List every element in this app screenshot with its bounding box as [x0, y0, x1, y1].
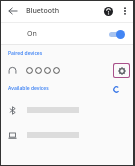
other: Scanning [111, 84, 121, 94]
button[interactable]: On [0, 23, 135, 44]
staticText: Available devices [8, 85, 49, 92]
button[interactable]: Device settings [114, 64, 129, 77]
staticText: On [27, 29, 37, 39]
button[interactable]: Back [4, 2, 22, 20]
staticText: Bluetooth [26, 6, 60, 16]
button[interactable] [0, 127, 135, 143]
staticText: Paired devices [8, 50, 43, 57]
button[interactable]: Help [99, 2, 117, 20]
button[interactable] [0, 102, 135, 118]
button[interactable]: Device settings [0, 61, 135, 80]
button[interactable]: More options [117, 3, 133, 19]
